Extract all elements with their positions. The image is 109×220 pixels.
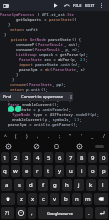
button[interactable]: ' bbox=[76, 131, 87, 141]
staticText: 7 bbox=[69, 154, 73, 162]
staticText: b bbox=[64, 195, 68, 203]
button[interactable]: . bbox=[85, 207, 93, 219]
button[interactable]: g bbox=[50, 179, 60, 191]
staticText: ( bbox=[26, 82, 29, 87]
button[interactable]: Shift bbox=[1, 193, 15, 205]
staticText: ( bbox=[32, 47, 35, 52]
staticText: type = bbox=[31, 112, 50, 117]
button[interactable]: / bbox=[98, 131, 109, 141]
button[interactable]: h bbox=[62, 179, 72, 191]
button[interactable]: , bbox=[28, 207, 36, 219]
staticText: ) bbox=[35, 12, 42, 17]
staticText: l bbox=[102, 181, 104, 189]
button[interactable]: 3 bbox=[22, 152, 31, 163]
button[interactable]: 8 bbox=[77, 152, 86, 163]
button[interactable]: n bbox=[72, 193, 81, 205]
staticText: p bbox=[102, 167, 106, 175]
button[interactable]: d bbox=[26, 179, 36, 191]
staticText: ' bbox=[81, 133, 83, 140]
staticText: e bbox=[25, 167, 29, 175]
staticText: h bbox=[65, 181, 69, 189]
button[interactable]: Clipboard bbox=[53, 143, 60, 150]
button[interactable]: Settings bbox=[76, 143, 83, 150]
button[interactable]: m bbox=[83, 193, 92, 205]
staticText: 2 bbox=[80, 57, 83, 62]
button[interactable]: . bbox=[43, 131, 54, 141]
button[interactable]: p bbox=[99, 165, 108, 177]
button[interactable]: 9 bbox=[88, 152, 97, 163]
button[interactable]: Undo bbox=[62, 1, 71, 10]
button[interactable]: Run bbox=[51, 1, 60, 10]
button[interactable]: FILE bbox=[73, 0, 82, 11]
button[interactable]: r bbox=[33, 165, 42, 177]
button[interactable]: ?1 bbox=[1, 207, 14, 219]
button[interactable]: " bbox=[65, 131, 76, 141]
button[interactable]: s bbox=[14, 179, 24, 191]
button[interactable]: Emoji bbox=[16, 207, 26, 219]
staticText: GetNode bbox=[30, 37, 46, 42]
button[interactable]: u bbox=[66, 165, 75, 177]
staticText: unit bbox=[31, 87, 41, 92]
staticText: private bbox=[8, 97, 27, 102]
staticText: consume bbox=[16, 47, 32, 52]
button[interactable]: 1 bbox=[1, 152, 9, 163]
button[interactable]: ; bbox=[54, 131, 65, 141]
button[interactable]: f bbox=[38, 179, 48, 191]
button[interactable]: EDIT bbox=[85, 0, 95, 11]
button[interactable]: x bbox=[28, 193, 37, 205]
button[interactable]: , bbox=[32, 131, 43, 141]
button[interactable]: i bbox=[77, 165, 86, 177]
staticText: import bbox=[19, 62, 33, 67]
button[interactable]: Backspace bbox=[94, 193, 108, 205]
staticText: } bbox=[12, 77, 15, 82]
button[interactable]: 0 bbox=[99, 152, 108, 163]
staticText: API bbox=[42, 12, 49, 17]
button[interactable]: b bbox=[61, 193, 70, 205]
staticText: nodeOf bbox=[76, 112, 90, 117]
button[interactable]: 2 bbox=[11, 152, 20, 163]
button[interactable]: k bbox=[86, 179, 96, 191]
button[interactable]: 5 bbox=[44, 152, 53, 163]
button[interactable]: Project drawer bbox=[1, 1, 10, 10]
button[interactable]: _ bbox=[87, 131, 98, 141]
button[interactable]: 6 bbox=[55, 152, 64, 163]
button[interactable]: j bbox=[74, 179, 84, 191]
button[interactable]: y bbox=[55, 165, 64, 177]
button[interactable]: a bbox=[1, 179, 12, 191]
button[interactable]: c bbox=[39, 193, 48, 205]
button[interactable]: z bbox=[17, 193, 26, 205]
button[interactable]: v bbox=[50, 193, 59, 205]
staticText: (p); bbox=[90, 112, 100, 117]
staticText: 3 bbox=[25, 154, 29, 162]
staticText: p. bbox=[24, 87, 31, 92]
button[interactable]: Find bbox=[3, 94, 12, 100]
staticText: Convert to uppercase bbox=[21, 94, 64, 100]
staticText: } bbox=[4, 32, 7, 37]
button[interactable]: Enter bbox=[95, 207, 108, 219]
button[interactable]: More options bbox=[97, 1, 106, 10]
staticText: j bbox=[78, 181, 80, 189]
button[interactable]: 4 bbox=[33, 152, 42, 163]
staticText: x bbox=[31, 195, 35, 203]
staticText: c bbox=[42, 195, 45, 203]
staticText: mkPar bbox=[58, 57, 70, 62]
button[interactable]: e bbox=[22, 165, 31, 177]
button[interactable]: 7 bbox=[66, 152, 75, 163]
staticText: ( bbox=[50, 67, 53, 72]
staticText: (); bbox=[41, 87, 48, 92]
button[interactable]: Stickers bbox=[33, 143, 40, 150]
button[interactable]: o bbox=[88, 165, 97, 177]
button[interactable]: w bbox=[11, 165, 20, 177]
staticText: ( bbox=[15, 133, 17, 140]
button[interactable]: ^ bbox=[0, 131, 10, 141]
button[interactable]: t bbox=[44, 165, 53, 177]
button[interactable]: ) bbox=[21, 131, 32, 141]
button[interactable]: Googlesource bbox=[38, 207, 83, 219]
button[interactable]: Convert to uppercase bbox=[21, 94, 64, 100]
button[interactable]: More keyboard tools bbox=[95, 145, 104, 148]
button[interactable]: l bbox=[98, 179, 108, 191]
button[interactable]: ( bbox=[10, 131, 21, 141]
button[interactable]: q bbox=[1, 165, 9, 177]
button[interactable]: Keyboard settings bbox=[5, 143, 12, 150]
button[interactable]: More actions bbox=[68, 92, 73, 101]
